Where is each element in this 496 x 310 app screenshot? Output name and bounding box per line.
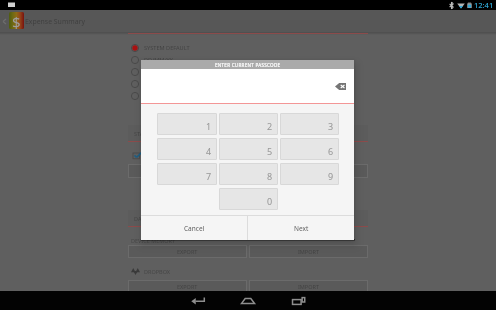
button[interactable]: DD-MMM-YY [128, 90, 368, 102]
button[interactable]: Back [181, 291, 215, 310]
staticText: MM/DD/YY [144, 68, 173, 76]
staticText: IMPORT [298, 283, 319, 290]
staticText: START DATE [134, 130, 165, 137]
staticText: 8 [267, 170, 273, 182]
staticText: $ [12, 12, 21, 29]
button[interactable]: YY/MM/DD [128, 78, 368, 90]
staticText: SYSTEM DEFAULT [144, 44, 190, 52]
button[interactable]: EXPORT [128, 245, 247, 258]
button[interactable]: 2 [219, 113, 278, 135]
button[interactable]: 8 [219, 163, 278, 185]
staticText: DROPBOX [144, 268, 171, 275]
staticText: ENTER CURRENT PASSCODE [215, 62, 281, 68]
staticText: 0 [267, 195, 273, 207]
button[interactable]: App icon [9, 12, 24, 29]
button[interactable]: 1 [157, 113, 217, 135]
staticText: Cancel [184, 224, 205, 233]
button[interactable]: Home [231, 291, 265, 310]
button[interactable]: START DATE [128, 125, 368, 142]
staticText: 12:41 [474, 0, 494, 10]
button[interactable]: DD/MM/YY [128, 54, 368, 66]
button[interactable]: 4 [157, 138, 217, 160]
staticText: 2 [267, 120, 273, 132]
staticText: DEVICE MEMORY [131, 237, 176, 244]
staticText: 7 [206, 170, 212, 182]
button[interactable]: EXPORT [128, 280, 247, 293]
staticText: Expense Summary [25, 17, 85, 26]
staticText: 4 [206, 145, 212, 157]
button[interactable]: IMPORT [249, 245, 368, 258]
button[interactable]: 5 [219, 138, 278, 160]
button[interactable]: 3 [280, 113, 339, 135]
button[interactable]: DATE RANGE [128, 210, 368, 227]
button[interactable]: 6 [280, 138, 339, 160]
button[interactable]: INCLUDE DETAILS [128, 151, 192, 161]
button[interactable]: GENERATE [128, 164, 368, 178]
button[interactable]: MM/DD/YY [128, 66, 368, 78]
staticText: 9 [328, 170, 334, 182]
staticText: 1 [206, 120, 212, 132]
button[interactable]: IMPORT [249, 280, 368, 293]
staticText: DD/MM/YY [144, 56, 173, 64]
staticText: EXPORT [177, 283, 198, 290]
button[interactable]: SYSTEM DEFAULT [128, 42, 368, 54]
button[interactable]: Next [248, 216, 354, 240]
staticText: 5 [267, 145, 273, 157]
button[interactable]: Recent apps [281, 291, 315, 310]
staticText: 3 [328, 120, 334, 132]
button[interactable]: Backspace [335, 83, 346, 90]
button[interactable]: Cancel [141, 216, 247, 240]
button[interactable]: 0 [219, 188, 278, 210]
staticText: EXPORT [177, 248, 198, 255]
button[interactable]: 9 [280, 163, 339, 185]
staticText: IMPORT [298, 248, 319, 255]
button[interactable]: 7 [157, 163, 217, 185]
staticText: 6 [328, 145, 334, 157]
staticText: Next [294, 224, 309, 233]
staticText: INCLUDE DETAILS [146, 153, 192, 160]
button[interactable]: Navigate up [1, 10, 8, 32]
staticText: DATE RANGE [134, 215, 167, 222]
